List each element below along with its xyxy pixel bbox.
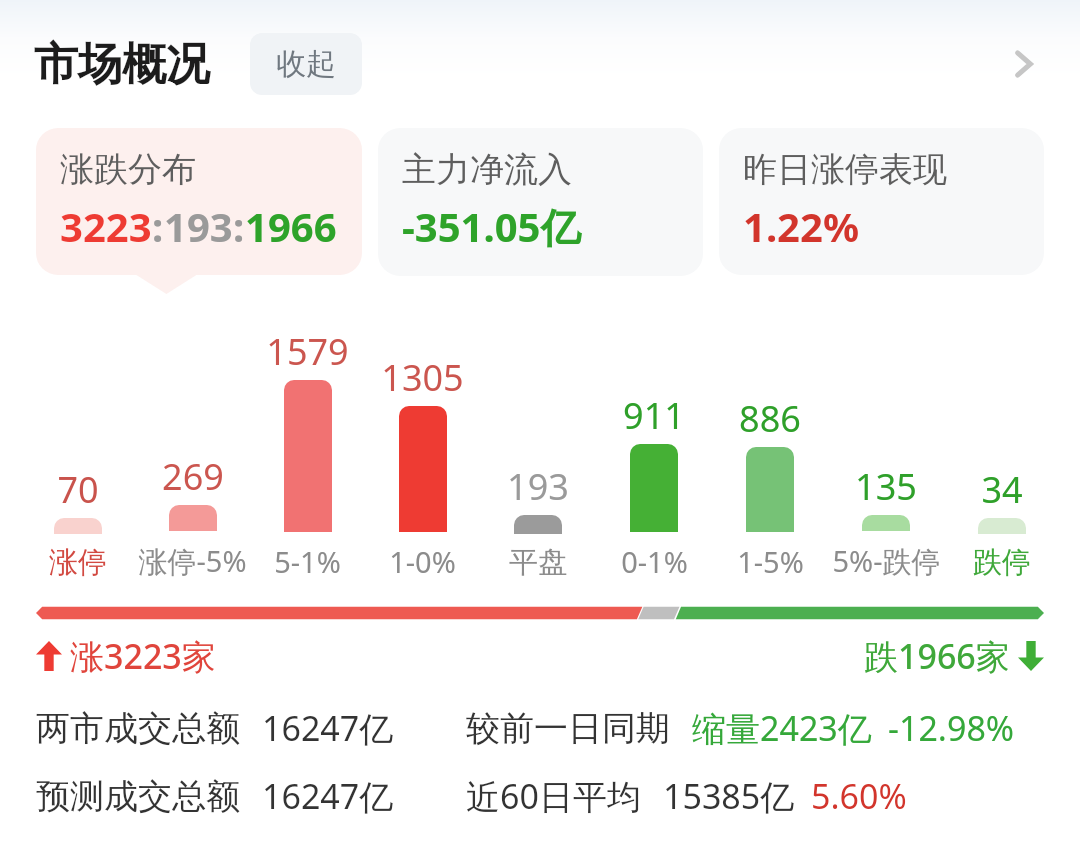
staticText: -351.05亿 bbox=[402, 199, 581, 254]
staticText: 1579 bbox=[266, 327, 349, 376]
button[interactable]: 昨日涨停表现 bbox=[719, 128, 1044, 275]
staticText: 34 bbox=[981, 465, 1023, 514]
staticText: 193 bbox=[507, 462, 569, 511]
staticText: 911 bbox=[623, 391, 685, 440]
staticText: 1305 bbox=[381, 353, 464, 402]
staticText: 5-1% bbox=[274, 542, 341, 581]
staticText: 70 bbox=[57, 465, 99, 514]
staticText: 跌1966家 bbox=[864, 633, 1010, 679]
staticText: 5.60% bbox=[811, 773, 907, 819]
staticText: 主力净流入 bbox=[402, 148, 572, 191]
staticText: 135 bbox=[855, 462, 917, 511]
staticText: 市场概况 bbox=[34, 37, 210, 92]
staticText: : bbox=[233, 199, 245, 253]
staticText: 5%-跌停 bbox=[832, 541, 941, 581]
staticText: 缩量2423亿 bbox=[692, 705, 872, 751]
staticText: -12.98% bbox=[888, 705, 1015, 751]
staticText: 涨停 bbox=[49, 544, 107, 581]
staticText: 16247亿 bbox=[262, 705, 394, 751]
button[interactable]: 收起 bbox=[250, 33, 362, 95]
staticText: 15385亿 bbox=[663, 773, 795, 819]
staticText: 1-5% bbox=[737, 542, 804, 581]
staticText: 16247亿 bbox=[262, 773, 394, 819]
staticText: 两市成交总额 bbox=[36, 707, 240, 750]
staticText: 涨3223家 bbox=[70, 633, 216, 679]
staticText: 涨跌分布 bbox=[60, 148, 196, 191]
staticText: 269 bbox=[162, 452, 224, 501]
button[interactable]: 主力净流入 bbox=[378, 128, 703, 276]
button[interactable]: More bbox=[994, 34, 1054, 94]
staticText: 跌停 bbox=[973, 544, 1031, 581]
staticText: 预测成交总额 bbox=[36, 775, 240, 818]
staticText: 近60日平均 bbox=[466, 773, 641, 819]
staticText: 昨日涨停表现 bbox=[743, 148, 947, 191]
staticText: 886 bbox=[739, 394, 801, 443]
staticText: 平盘 bbox=[509, 544, 567, 581]
staticText: 3223 bbox=[60, 199, 152, 253]
staticText: 1966 bbox=[245, 199, 337, 253]
button[interactable]: 涨跌分布 bbox=[36, 128, 362, 275]
staticText: 1.22% bbox=[743, 199, 859, 253]
staticText: : bbox=[152, 199, 164, 253]
staticText: 0-1% bbox=[621, 542, 688, 581]
staticText: 1-0% bbox=[389, 542, 456, 581]
staticText: 较前一日同期 bbox=[466, 707, 670, 750]
staticText: 涨停-5% bbox=[138, 541, 247, 581]
staticText: 收起 bbox=[276, 45, 336, 83]
staticText: 193 bbox=[164, 199, 233, 253]
